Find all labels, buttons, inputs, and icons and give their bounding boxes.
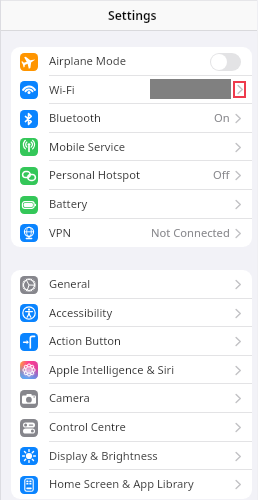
button[interactable]: Camera (11, 384, 252, 413)
button[interactable]: Airplane Mode (11, 47, 252, 76)
staticText: Settings (108, 7, 157, 24)
staticText: On (214, 110, 230, 125)
staticText: Camera (49, 390, 90, 405)
button[interactable]: Apple Intelligence & Siri (11, 356, 252, 384)
staticText: Wi-Fi (49, 82, 75, 97)
staticText: Mobile Service (49, 139, 126, 154)
button[interactable]: Accessibility (11, 299, 252, 327)
button[interactable]: Battery (11, 190, 252, 219)
button[interactable]: Mobile Service (11, 133, 252, 161)
staticText: Apple Intelligence & Siri (49, 362, 175, 377)
staticText: Not Connected (151, 225, 230, 240)
button[interactable]: Home Screen & App Library (11, 470, 252, 499)
staticText: Accessibility (49, 305, 113, 320)
staticText: Personal Hotspot (49, 167, 140, 182)
button[interactable]: Action Button (11, 327, 252, 356)
staticText: Home Screen & App Library (49, 476, 194, 491)
staticText: VPN (49, 225, 71, 240)
staticText: Control Centre (49, 419, 126, 434)
button[interactable]: Airplane Mode toggle (210, 53, 241, 71)
button[interactable]: Personal Hotspot (11, 161, 252, 190)
staticText: Off (213, 167, 230, 182)
staticText: Bluetooth (49, 110, 101, 125)
staticText: Battery (49, 196, 88, 211)
button[interactable]: Bluetooth (11, 104, 252, 133)
button[interactable]: Control Centre (11, 413, 252, 442)
staticText: Display & Brightness (49, 448, 158, 463)
button[interactable]: Wi-Fi (11, 76, 252, 104)
staticText: General (49, 276, 91, 291)
button[interactable]: VPN (11, 219, 252, 247)
staticText: Airplane Mode (49, 53, 126, 68)
button[interactable]: Display & Brightness (11, 442, 252, 470)
staticText: Action Button (49, 333, 121, 348)
button[interactable]: General (11, 270, 252, 299)
